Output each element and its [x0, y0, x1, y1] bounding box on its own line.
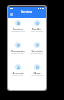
staticText: edit details	[31, 30, 43, 32]
button[interactable]: Security	[27, 42, 46, 54]
button[interactable]: More	[27, 64, 46, 76]
staticText: your data	[12, 74, 23, 76]
staticText: Services	[21, 10, 33, 14]
button[interactable]: Menu	[10, 10, 13, 18]
staticText: Account	[12, 72, 24, 74]
staticText: 2fa settings	[30, 52, 43, 54]
button[interactable]: Account	[8, 64, 27, 76]
button[interactable]: Invoice	[8, 20, 27, 32]
staticText: all services	[31, 74, 43, 76]
staticText: Security	[31, 50, 43, 52]
staticText: manage bills	[11, 30, 25, 32]
staticText: Payments	[11, 50, 25, 52]
staticText: More	[33, 72, 41, 74]
button[interactable]: Profile	[27, 20, 46, 32]
staticText: Profile	[32, 28, 41, 30]
button[interactable]: Payments	[8, 42, 27, 54]
staticText: cards & upi	[11, 52, 24, 54]
staticText: Invoice	[13, 28, 23, 30]
